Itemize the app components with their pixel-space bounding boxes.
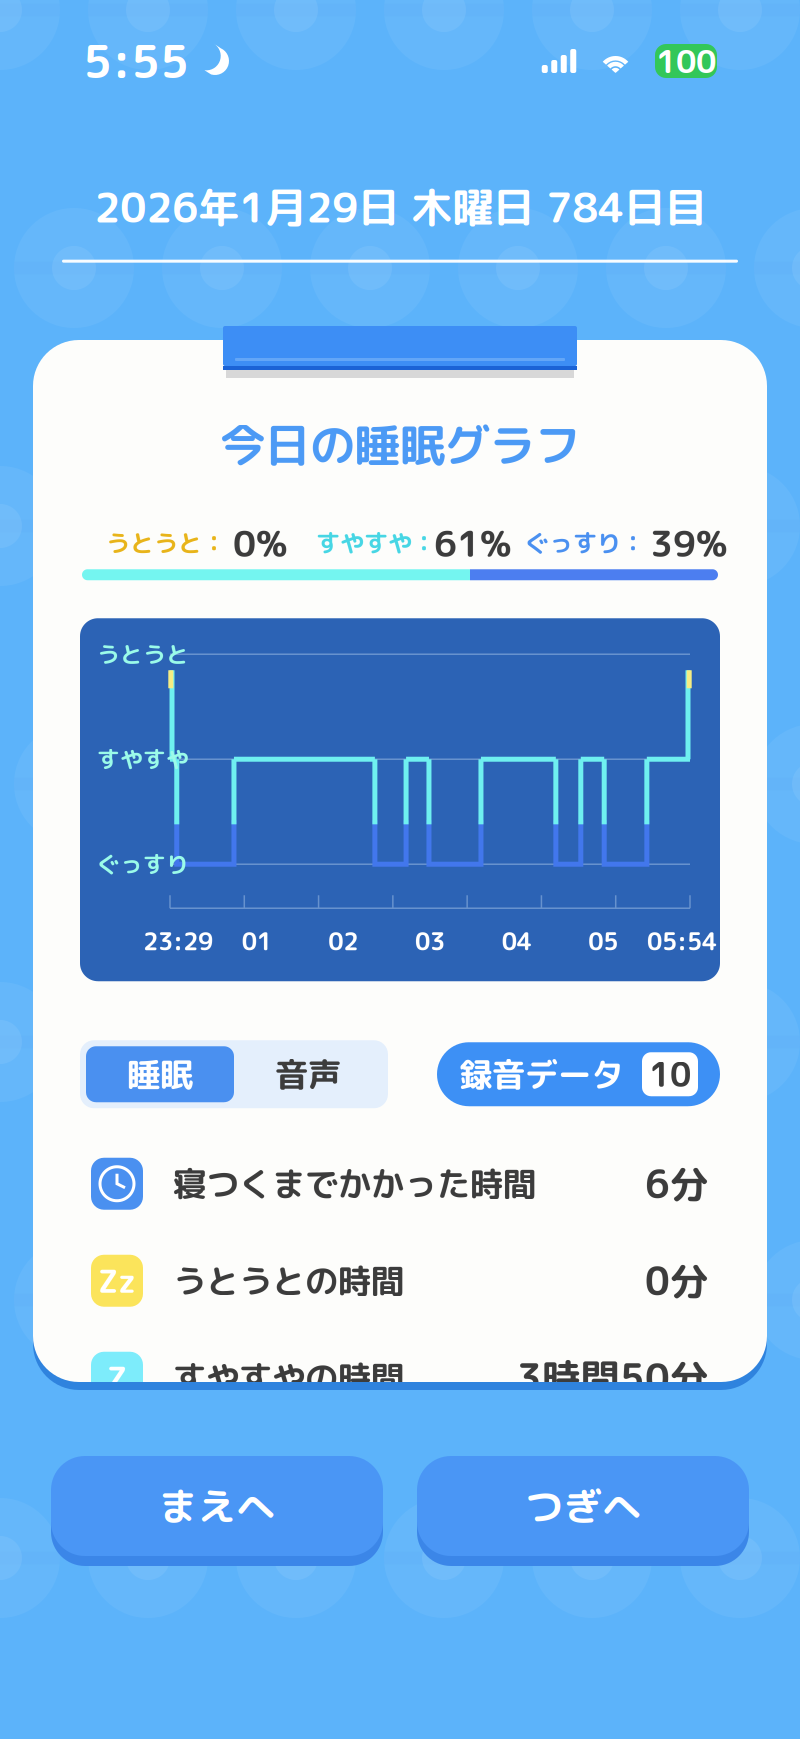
staticText: 6分: [645, 1157, 709, 1211]
staticText: 05: [588, 924, 618, 958]
staticText: 睡眠: [127, 1051, 193, 1097]
staticText: 61%: [434, 518, 511, 568]
staticText: ぐっすり：: [525, 526, 645, 560]
staticText: 100: [656, 39, 716, 83]
staticText: うとうとの時間: [173, 1257, 404, 1304]
staticText: Z: [107, 1355, 127, 1400]
staticText: 0分: [645, 1254, 709, 1308]
staticText: うとうと: [97, 638, 189, 670]
staticText: つぎへ: [524, 1479, 641, 1533]
staticText: 01: [242, 924, 272, 958]
staticText: Zz: [98, 1258, 136, 1303]
staticText: 音声: [275, 1051, 341, 1097]
button[interactable]: まえへ: [51, 1453, 383, 1563]
staticText: 寝つくまでかかった時間: [173, 1160, 536, 1207]
staticText: 04: [502, 924, 532, 958]
staticText: すやすや: [97, 743, 189, 775]
staticText: 10: [649, 1051, 691, 1097]
staticText: 5:55: [83, 29, 189, 93]
button[interactable]: 睡眠: [86, 1046, 234, 1102]
staticText: 03: [415, 924, 445, 958]
staticText: 録音データ: [459, 1051, 624, 1097]
staticText: 0%: [233, 518, 287, 568]
staticText: 39%: [650, 518, 727, 568]
button[interactable]: 音声: [234, 1046, 382, 1102]
staticText: 今日の睡眠グラフ: [220, 413, 580, 476]
staticText: 3時間50分: [517, 1351, 709, 1405]
staticText: すやすやの時間: [173, 1354, 404, 1401]
staticText: 23:29: [143, 924, 213, 958]
staticText: うとうと：: [106, 526, 226, 560]
staticText: 02: [328, 924, 358, 958]
button[interactable]: つぎへ: [417, 1453, 749, 1563]
staticText: ぐっすり: [97, 848, 189, 880]
staticText: 2026年1月29日 木曜日 784日目: [94, 178, 706, 236]
button[interactable]: 録音データ: [437, 1042, 720, 1106]
staticText: すやすや：: [316, 526, 436, 560]
staticText: 05:54: [647, 924, 717, 958]
staticText: まえへ: [158, 1479, 275, 1533]
